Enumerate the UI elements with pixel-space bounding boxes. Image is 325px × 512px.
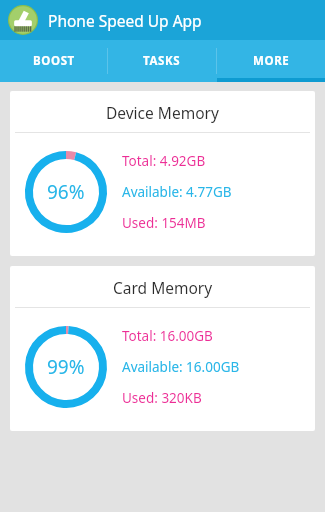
staticText: Device Memory bbox=[106, 102, 219, 123]
button[interactable]: App icon bbox=[8, 5, 38, 35]
staticText: BOOST bbox=[33, 53, 75, 69]
button[interactable]: BOOST bbox=[0, 40, 107, 82]
staticText: MORE bbox=[253, 53, 290, 69]
button[interactable]: TASKS bbox=[108, 40, 216, 82]
staticText: Phone Speed Up App bbox=[48, 10, 202, 31]
staticText: 96% bbox=[47, 179, 85, 205]
staticText: Total: 16.00GB bbox=[122, 327, 213, 345]
staticText: 99% bbox=[47, 354, 85, 380]
staticText: Total: 4.92GB bbox=[122, 152, 206, 170]
button[interactable]: Device Memory bbox=[10, 91, 315, 256]
staticText: Card Memory bbox=[113, 277, 213, 298]
button[interactable]: Card Memory bbox=[10, 266, 315, 431]
staticText: Available: 16.00GB bbox=[122, 358, 240, 376]
staticText: TASKS bbox=[143, 53, 181, 69]
staticText: Available: 4.77GB bbox=[122, 183, 232, 201]
button[interactable]: MORE bbox=[217, 40, 325, 82]
staticText: Used: 320KB bbox=[122, 389, 202, 407]
staticText: Used: 154MB bbox=[122, 214, 206, 232]
